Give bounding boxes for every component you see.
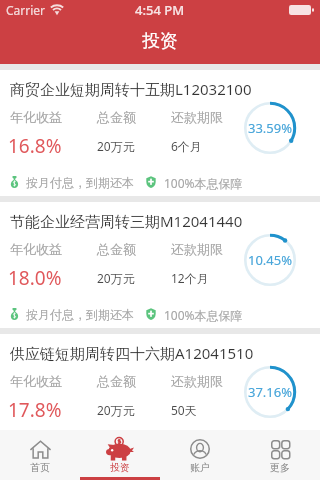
button[interactable]: 节能企业经营周转三期M12041440 xyxy=(0,202,320,328)
staticText: 还款期限 xyxy=(171,109,223,125)
staticText: 按月付息，到期还本 xyxy=(26,307,134,322)
staticText: 年化收益 xyxy=(10,109,62,125)
staticText: 投资 xyxy=(110,461,130,474)
staticText: 商贸企业短期周转十五期L12032100 xyxy=(10,79,252,99)
staticText: 50天 xyxy=(171,402,197,418)
staticText: 33.59% xyxy=(248,119,293,137)
button[interactable]: 商贸企业短期周转十五期L12032100 xyxy=(0,70,320,196)
staticText: 16.8% xyxy=(8,133,62,159)
staticText: 20万元 xyxy=(97,402,135,418)
staticText: 还款期限 xyxy=(171,373,223,389)
staticText: 供应链短期周转四十六期A12041510 xyxy=(10,343,254,363)
staticText: 按月付息，到期还本 xyxy=(26,439,134,454)
staticText: 更多 xyxy=(270,461,290,474)
button[interactable]: 首页 xyxy=(0,430,80,480)
other: 账户 xyxy=(190,439,210,459)
other: 更多 xyxy=(271,440,289,458)
staticText: 100%本息保障 xyxy=(164,175,243,191)
staticText: 17.8% xyxy=(8,397,62,423)
staticText: 12个月 xyxy=(171,270,209,286)
staticText: 37.16% xyxy=(248,383,293,401)
staticText: 100%本息保障 xyxy=(164,307,243,323)
staticText: 还款期限 xyxy=(171,241,223,257)
staticText: 总金额 xyxy=(97,373,136,389)
button[interactable]: 投资 xyxy=(80,430,160,480)
staticText: 按月付息，到期还本 xyxy=(26,175,134,190)
staticText: 投资 xyxy=(142,30,178,53)
staticText: 年化收益 xyxy=(10,373,62,389)
staticText: 4:54 PM xyxy=(135,1,185,19)
staticText: 6个月 xyxy=(171,138,202,154)
button[interactable]: 更多 xyxy=(240,430,320,480)
staticText: 10.45% xyxy=(248,251,293,269)
staticText: 100%本息保障 xyxy=(164,439,243,455)
staticText: 总金额 xyxy=(97,109,136,125)
staticText: 18.0% xyxy=(8,265,62,291)
staticText: 20万元 xyxy=(97,138,135,154)
staticText: 总金额 xyxy=(97,241,136,257)
other: 首页 xyxy=(30,440,51,459)
staticText: 20万元 xyxy=(97,270,135,286)
staticText: 首页 xyxy=(30,461,50,474)
button[interactable]: 供应链短期周转四十六期A12041510 xyxy=(0,334,320,430)
other: 投资 xyxy=(106,437,134,461)
staticText: Carrier xyxy=(6,2,46,18)
button[interactable]: 账户 xyxy=(160,430,240,480)
staticText: 账户 xyxy=(190,461,210,474)
staticText: 节能企业经营周转三期M12041440 xyxy=(10,211,243,231)
staticText: 年化收益 xyxy=(10,241,62,257)
